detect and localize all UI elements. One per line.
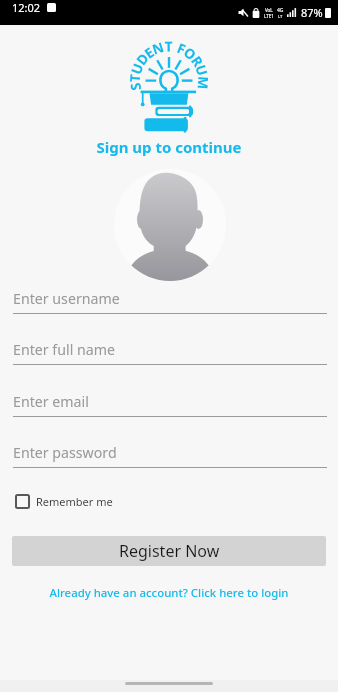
button[interactable]: Enter full name [13,340,327,365]
button[interactable]: Register Now [12,536,326,566]
staticText: Remember me [36,494,113,509]
staticText: Enter full name [13,340,115,359]
staticText: 4G [277,7,284,14]
staticText: Enter username [13,289,120,308]
button[interactable]: Already have an account? Click here to l… [0,585,338,601]
button[interactable]: Profile photo [114,169,226,281]
staticText: Enter password [13,443,117,462]
staticText: 12:02 [12,0,41,15]
staticText: Register Now [119,540,220,562]
staticText: Sign up to continue [0,137,338,157]
button[interactable]: Enter email [13,392,327,417]
staticText: LTE1 [264,13,274,19]
staticText: Enter email [13,392,89,411]
button[interactable]: Enter username [13,289,327,314]
staticText: 87% [301,5,323,20]
staticText: VoL [265,7,273,13]
button[interactable]: Remember me [13,492,119,511]
staticText: LT [278,14,283,19]
button[interactable]: Enter password [13,443,327,468]
